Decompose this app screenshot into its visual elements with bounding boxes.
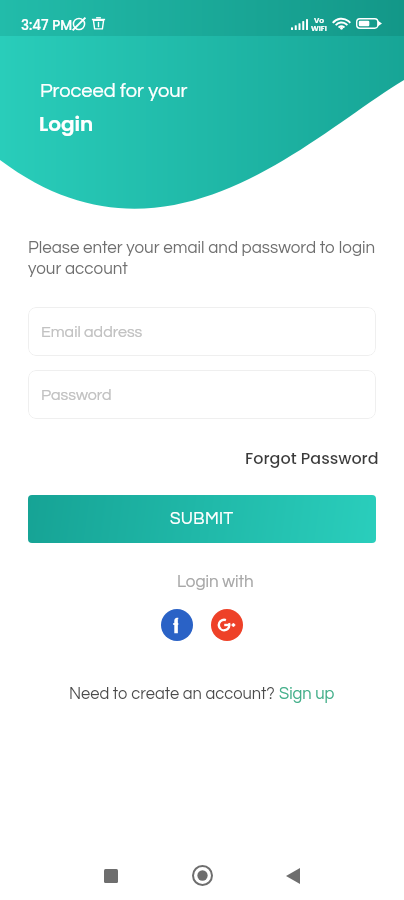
button[interactable]: Recents [83, 851, 139, 900]
button[interactable]: Email address [28, 307, 376, 356]
staticText: Proceed for your [40, 81, 188, 102]
staticText: Need to create an account? [69, 685, 279, 702]
button[interactable]: Back [265, 851, 321, 900]
button[interactable]: Sign up [279, 685, 335, 702]
button[interactable]: Password [28, 370, 376, 419]
button[interactable]: Home [174, 851, 230, 900]
button[interactable]: SUBMIT [28, 495, 376, 543]
staticText: 3:47 PM [21, 16, 73, 35]
staticText: Vo [314, 15, 325, 25]
staticText: Login [39, 110, 94, 138]
button[interactable]: Login with Google [211, 609, 243, 641]
staticText: SUBMIT [170, 510, 234, 528]
staticText: Password [41, 387, 112, 403]
staticText: Email address [41, 324, 143, 340]
button[interactable]: Login with Facebook [161, 609, 193, 641]
staticText: Please enter your email and password to … [28, 239, 380, 277]
button[interactable]: Forgot Password [241, 443, 383, 473]
button[interactable]: Login with [177, 573, 254, 591]
staticText: WiFi [311, 23, 327, 33]
